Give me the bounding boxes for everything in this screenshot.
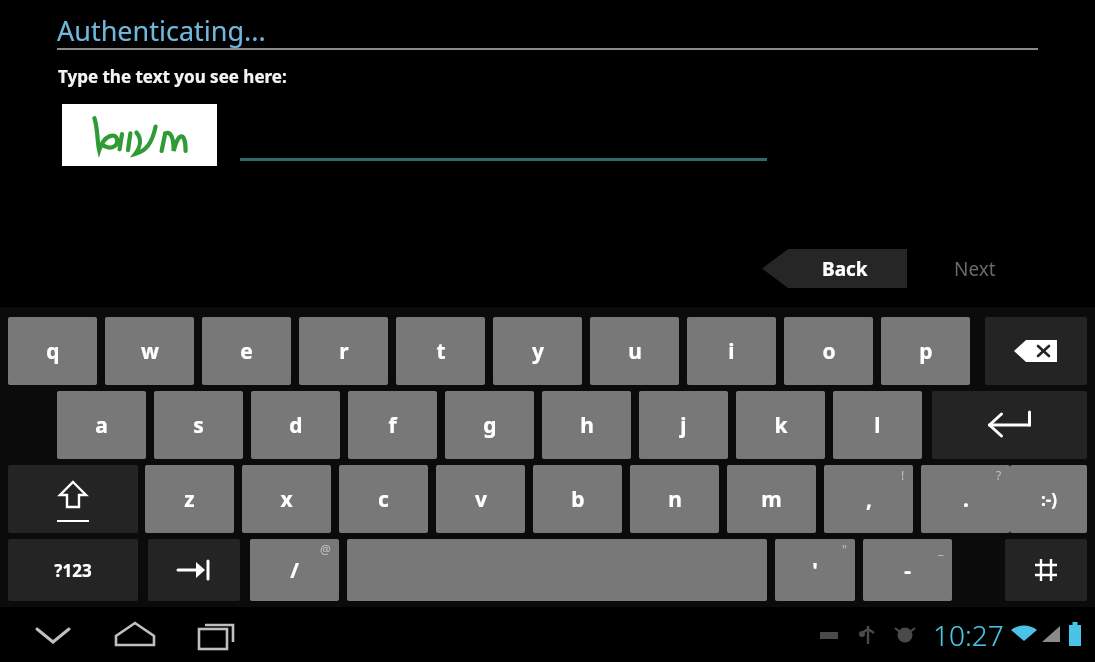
staticText: / [290, 556, 299, 585]
staticText: - [904, 556, 911, 585]
staticText: e [240, 337, 253, 366]
staticText: d [289, 411, 303, 440]
button[interactable]: u [590, 317, 679, 385]
staticText: @ [320, 541, 331, 557]
button[interactable]: z [145, 465, 234, 533]
staticText: x [280, 485, 293, 514]
button[interactable]: Switch keyboard [1005, 539, 1087, 601]
staticText: j [680, 411, 687, 440]
button[interactable]: x [242, 465, 331, 533]
button[interactable]: ?123 [8, 539, 138, 601]
button[interactable]: b [533, 465, 622, 533]
staticText: ' [812, 556, 818, 585]
staticText: t [436, 337, 446, 366]
button[interactable]: Shift [8, 465, 138, 533]
staticText: s [193, 411, 204, 440]
button[interactable]: Hide keyboard [22, 615, 84, 655]
button[interactable]: k [736, 391, 825, 459]
button[interactable]: l [833, 391, 922, 459]
button[interactable]: - [863, 539, 952, 601]
staticText: z [184, 485, 195, 514]
staticText: ? [996, 467, 1002, 483]
button[interactable]: ' [775, 539, 855, 601]
button[interactable]: h [542, 391, 631, 459]
button[interactable]: m [727, 465, 816, 533]
staticText: m [761, 485, 782, 514]
button[interactable]: o [784, 317, 873, 385]
button[interactable]: Back [762, 249, 907, 288]
staticText: Authenticating... [57, 12, 266, 49]
staticText: g [483, 411, 497, 440]
button[interactable]: . [921, 465, 1010, 533]
button[interactable]: r [299, 317, 388, 385]
staticText: f [388, 411, 397, 440]
staticText: Type the text you see here: [58, 65, 287, 88]
staticText: y [532, 337, 544, 366]
button[interactable]: d [251, 391, 340, 459]
button[interactable]: j [639, 391, 728, 459]
button[interactable]: y [493, 317, 582, 385]
staticText: Back [822, 256, 868, 282]
staticText: v [475, 485, 487, 514]
staticText: c [378, 485, 389, 514]
staticText: h [580, 411, 594, 440]
button[interactable]: , [824, 465, 913, 533]
button[interactable]: v [436, 465, 525, 533]
button[interactable]: e [202, 317, 291, 385]
button[interactable]: c [339, 465, 428, 533]
button[interactable]: f [348, 391, 437, 459]
staticText: . [963, 485, 969, 514]
button[interactable]: Tab [148, 539, 240, 601]
button[interactable]: g [445, 391, 534, 459]
staticText: ! [901, 467, 905, 483]
staticText: , [866, 485, 872, 514]
staticText: p [919, 337, 933, 366]
staticText: n [668, 485, 682, 514]
button[interactable]: w [105, 317, 194, 385]
staticText: k [774, 411, 788, 440]
button[interactable]: / [250, 539, 339, 601]
staticText: r [339, 337, 349, 366]
button[interactable]: Home [104, 615, 166, 655]
staticText: o [822, 337, 836, 366]
button[interactable]: a [57, 391, 146, 459]
staticText: ?123 [54, 559, 92, 582]
staticText: :-) [1041, 488, 1057, 511]
staticText: " [842, 541, 847, 557]
button[interactable]: n [630, 465, 719, 533]
staticText: l [874, 411, 881, 440]
staticText: q [46, 337, 60, 366]
button[interactable]: Enter [932, 391, 1087, 459]
staticText: w [141, 337, 159, 366]
staticText: a [95, 411, 108, 440]
button[interactable]: q [8, 317, 97, 385]
button[interactable]: Next [920, 249, 1030, 288]
staticText: b [571, 485, 585, 514]
button[interactable]: i [687, 317, 776, 385]
staticText: 10:27 [933, 616, 1004, 654]
staticText: i [728, 337, 735, 366]
staticText: u [628, 337, 642, 366]
staticText: Next [954, 256, 996, 282]
button[interactable]: p [881, 317, 970, 385]
button[interactable]: s [154, 391, 243, 459]
button[interactable]: Recent apps [186, 615, 248, 655]
staticText: _ [938, 541, 944, 557]
button[interactable]: t [396, 317, 485, 385]
button[interactable]: :-) [1010, 465, 1087, 533]
button[interactable]: Backspace [985, 317, 1087, 385]
